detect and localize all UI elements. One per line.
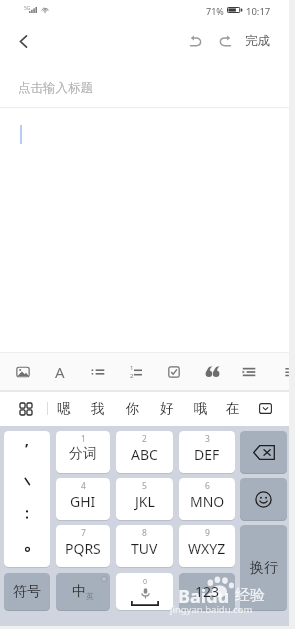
button[interactable]: 5 bbox=[116, 478, 173, 520]
button[interactable]: Expand candidates bbox=[249, 391, 281, 426]
staticText: 符号 bbox=[13, 583, 41, 601]
staticText: 71% bbox=[206, 5, 224, 17]
staticText: WXYZ bbox=[188, 539, 226, 558]
button[interactable]: Switch Chinese English bbox=[56, 573, 110, 610]
staticText: 我 bbox=[91, 400, 105, 417]
staticText: 123 bbox=[195, 582, 220, 601]
staticText: 英 bbox=[86, 591, 94, 601]
button[interactable]: 完成 bbox=[242, 27, 273, 55]
staticText: 换行 bbox=[250, 559, 278, 577]
staticText: PQRS bbox=[65, 539, 101, 558]
button[interactable]: Keyboard layout bbox=[9, 391, 43, 426]
button[interactable]: Back bbox=[7, 25, 39, 57]
button[interactable]: 2 bbox=[116, 431, 173, 473]
staticText: 中 bbox=[72, 583, 86, 601]
button[interactable]: 嗯 bbox=[49, 391, 79, 426]
staticText: 0 bbox=[143, 577, 148, 587]
staticText: 8 bbox=[142, 527, 147, 539]
staticText: 在 bbox=[226, 400, 240, 417]
button[interactable]: Insert image bbox=[5, 352, 41, 391]
staticText: DEF bbox=[194, 445, 220, 464]
staticText: 9 bbox=[205, 527, 210, 539]
staticText: Baidu bbox=[178, 584, 230, 609]
staticText: 2 bbox=[142, 433, 147, 445]
button[interactable]: 换行 bbox=[240, 525, 287, 610]
staticText: A bbox=[55, 362, 65, 382]
button[interactable]: More options bbox=[269, 352, 295, 391]
button[interactable]: Space bbox=[116, 573, 173, 610]
button[interactable]: 哦 bbox=[186, 391, 216, 426]
staticText: 7 bbox=[81, 527, 86, 539]
button[interactable]: Redo bbox=[211, 27, 239, 55]
staticText: 好 bbox=[160, 400, 174, 417]
button[interactable]: Emoji bbox=[240, 478, 287, 520]
button[interactable]: 好 bbox=[152, 391, 182, 426]
staticText: 6 bbox=[205, 480, 210, 492]
staticText: 哦 bbox=[194, 400, 208, 417]
staticText: GHI bbox=[70, 492, 96, 511]
button[interactable]: 你 bbox=[118, 391, 148, 426]
staticText: ’ bbox=[25, 438, 29, 458]
button[interactable]: 符号 bbox=[4, 573, 50, 610]
staticText: jingyan.baidu.com bbox=[170, 603, 253, 616]
staticText: ABC bbox=[131, 445, 158, 464]
staticText: MNO bbox=[190, 492, 225, 511]
button[interactable]: Bullet list bbox=[80, 352, 116, 391]
button[interactable]: 7 bbox=[56, 525, 110, 567]
staticText: JKL bbox=[135, 492, 155, 511]
button[interactable]: 9 bbox=[179, 525, 235, 567]
button[interactable]: Punctuation bbox=[4, 431, 50, 567]
staticText: 你 bbox=[126, 400, 140, 417]
staticText: 完成 bbox=[245, 33, 270, 49]
button[interactable]: 6 bbox=[179, 478, 235, 520]
button[interactable]: 我 bbox=[83, 391, 113, 426]
button[interactable]: Numbers bbox=[179, 573, 235, 610]
button[interactable]: 1 bbox=[56, 431, 110, 473]
staticText: 点击输入标题 bbox=[18, 80, 93, 96]
staticText: 5G bbox=[24, 5, 31, 12]
button[interactable]: 在 bbox=[218, 391, 248, 426]
staticText: 5 bbox=[142, 480, 147, 492]
staticText: 嗯 bbox=[57, 400, 71, 417]
staticText: 3 bbox=[205, 433, 210, 445]
button[interactable]: 3 bbox=[179, 431, 235, 473]
button[interactable]: 4 bbox=[56, 478, 110, 520]
button[interactable]: Backspace bbox=[240, 431, 287, 473]
staticText: 2 bbox=[130, 372, 134, 380]
button[interactable]: Font style bbox=[42, 352, 78, 391]
staticText: 1 bbox=[130, 364, 134, 372]
button[interactable]: Undo bbox=[181, 27, 209, 55]
staticText: 10:17 bbox=[246, 5, 271, 18]
button[interactable]: 8 bbox=[116, 525, 173, 567]
button[interactable]: Alignment bbox=[231, 352, 267, 391]
button[interactable]: Numbered list bbox=[118, 352, 154, 391]
staticText: 经验 bbox=[235, 586, 265, 605]
button[interactable]: Checklist bbox=[156, 352, 192, 391]
staticText: 4 bbox=[81, 480, 86, 492]
staticText: TUV bbox=[131, 539, 158, 558]
staticText: 1 bbox=[81, 433, 86, 445]
button[interactable]: Quote bbox=[194, 352, 230, 391]
staticText: 分词 bbox=[69, 445, 97, 463]
